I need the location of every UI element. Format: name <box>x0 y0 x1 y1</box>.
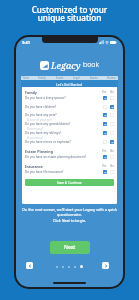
button[interactable]: Unchecked <box>110 113 114 117</box>
button[interactable]: Checked <box>103 170 107 174</box>
staticText: Assets <box>90 76 98 80</box>
button[interactable]: Checked <box>103 122 107 126</box>
staticText: Legal <box>73 76 80 80</box>
button[interactable]: Unchecked <box>110 96 114 100</box>
staticText: Estate Planning <box>25 149 53 154</box>
staticText: Let's Get Started <box>56 82 83 86</box>
staticText: No <box>110 149 114 153</box>
button[interactable]: Previous slide <box>26 262 33 269</box>
staticText: Do you have any pets? <box>25 113 101 117</box>
staticText: Start <box>23 76 29 80</box>
staticText: Estate <box>56 76 64 80</box>
staticText: Yes <box>102 90 107 94</box>
staticText: How many? <box>27 127 44 131</box>
button[interactable]: Review <box>107 76 116 80</box>
button[interactable]: Checked <box>103 155 107 159</box>
staticText: Do you have children? <box>25 105 101 109</box>
button[interactable]: Do you have life insurance? <box>25 169 114 175</box>
staticText: Customized to your unique situation <box>0 4 139 23</box>
button[interactable]: Start <box>23 76 29 80</box>
staticText: On the next screen, we'll start your Leg… <box>18 207 121 223</box>
button[interactable]: Estate <box>56 76 64 80</box>
staticText: Name of your pet <box>27 118 52 122</box>
staticText: Yes <box>102 149 107 153</box>
staticText: No <box>110 164 114 168</box>
button[interactable]: Unchecked <box>110 131 114 135</box>
button[interactable]: Next <box>50 241 90 254</box>
staticText: Legacy <box>51 59 81 71</box>
staticText: Next <box>64 244 76 251</box>
button[interactable]: Checked <box>110 140 114 144</box>
staticText: book <box>83 60 99 70</box>
button[interactable]: Do you have an estate planning document? <box>25 154 114 160</box>
button[interactable]: Legal <box>73 76 80 80</box>
button[interactable]: Let's Get Started <box>21 80 118 87</box>
staticText: Do you have an estate planning document? <box>25 155 101 159</box>
button[interactable]: Checked <box>110 105 114 109</box>
button[interactable]: Do you have any pets? <box>25 112 114 122</box>
button[interactable]: Do you have any siblings? <box>25 130 114 140</box>
button[interactable]: Do you have a living spouse? <box>25 95 114 101</box>
staticText: Family <box>25 90 37 95</box>
staticText: Do you have life insurance? <box>25 170 101 174</box>
staticText: Insurance <box>25 164 43 169</box>
button[interactable]: Checked <box>103 131 107 135</box>
staticText: Do you have a living spouse? <box>25 96 101 100</box>
staticText: No <box>110 90 114 94</box>
button[interactable]: Unchecked <box>110 155 114 159</box>
staticText: Yes <box>102 164 107 168</box>
staticText: How many? <box>27 136 44 140</box>
staticText: Review <box>107 76 116 80</box>
button[interactable]: Checked <box>103 96 107 100</box>
button[interactable]: Unchecked <box>110 170 114 174</box>
staticText: Do you have nieces or nephews? <box>25 140 101 144</box>
button[interactable]: Do you have nieces or nephews? <box>25 139 114 145</box>
button[interactable]: Save & Continue <box>25 179 114 186</box>
staticText: Do you have any grandchildren? <box>25 122 101 126</box>
staticText: Do you have any siblings? <box>25 131 101 135</box>
button[interactable]: Do you have children? <box>25 104 114 110</box>
button[interactable]: Checked <box>103 113 107 117</box>
staticText: Save & Continue <box>57 181 82 185</box>
button[interactable]: Unchecked <box>103 140 107 144</box>
button[interactable]: Unchecked <box>110 122 114 126</box>
button[interactable]: Do you have any grandchildren? <box>25 121 114 131</box>
staticText: 9:41 <box>22 40 30 45</box>
staticText: Family <box>38 76 46 80</box>
button[interactable]: Unchecked <box>103 105 107 109</box>
button[interactable]: Assets <box>90 76 98 80</box>
button[interactable]: Next slide <box>102 262 109 269</box>
button[interactable]: Family <box>38 76 46 80</box>
